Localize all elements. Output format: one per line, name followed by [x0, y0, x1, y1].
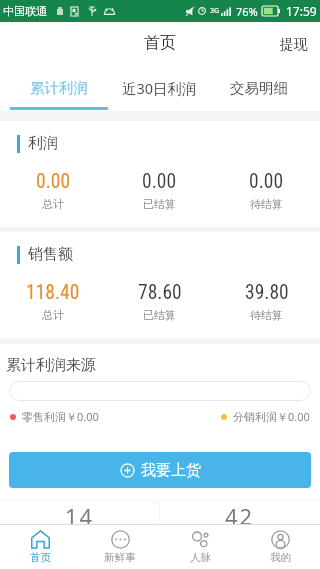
staticText: 中国联通: [3, 4, 47, 18]
button[interactable]: 我要上货: [9, 452, 311, 488]
button[interactable]: 交易明细: [209, 65, 309, 110]
staticText: 累计利润来源: [6, 356, 96, 375]
button[interactable]: 累计利润: [9, 65, 109, 110]
staticText: 我的: [270, 551, 291, 564]
staticText: 0.00: [142, 170, 177, 193]
staticText: 已结算: [143, 197, 176, 211]
button[interactable]: 人脉: [160, 525, 240, 569]
staticText: 我要上货: [141, 461, 201, 480]
staticText: 已结算: [143, 308, 176, 322]
staticText: 3G: [210, 6, 220, 16]
staticText: 首页: [30, 551, 51, 564]
staticText: 零售利润￥0.00: [22, 409, 99, 424]
button[interactable]: 新鲜事: [80, 525, 160, 569]
staticText: 交易明细: [230, 79, 288, 97]
staticText: 118.40: [26, 281, 80, 304]
staticText: 利润: [28, 134, 58, 153]
staticText: 待结算: [250, 308, 283, 322]
button[interactable]: 我的: [240, 525, 320, 569]
staticText: 提现: [280, 36, 308, 54]
staticText: 首页: [144, 33, 176, 53]
staticText: 14: [65, 501, 95, 531]
staticText: 78.60: [138, 281, 182, 304]
staticText: 42: [225, 501, 255, 531]
staticText: 销售额: [28, 245, 73, 264]
button[interactable]: 近30日利润: [109, 65, 209, 110]
staticText: 0.00: [249, 170, 284, 193]
button[interactable]: 提现: [268, 25, 320, 65]
staticText: 分销利润￥0.00: [233, 409, 310, 424]
staticText: 待结算: [250, 197, 283, 211]
staticText: 总计: [42, 197, 64, 211]
staticText: 39.80: [245, 281, 289, 304]
staticText: 0.00: [36, 170, 71, 193]
staticText: 17:59: [286, 3, 317, 19]
staticText: 近30日利润: [122, 78, 197, 98]
staticText: 76%: [236, 4, 258, 19]
staticText: 新鲜事: [104, 551, 136, 564]
staticText: 总计: [42, 308, 64, 322]
staticText: 人脉: [190, 551, 211, 564]
staticText: 累计利润: [30, 79, 88, 97]
button[interactable]: 首页: [0, 525, 80, 569]
